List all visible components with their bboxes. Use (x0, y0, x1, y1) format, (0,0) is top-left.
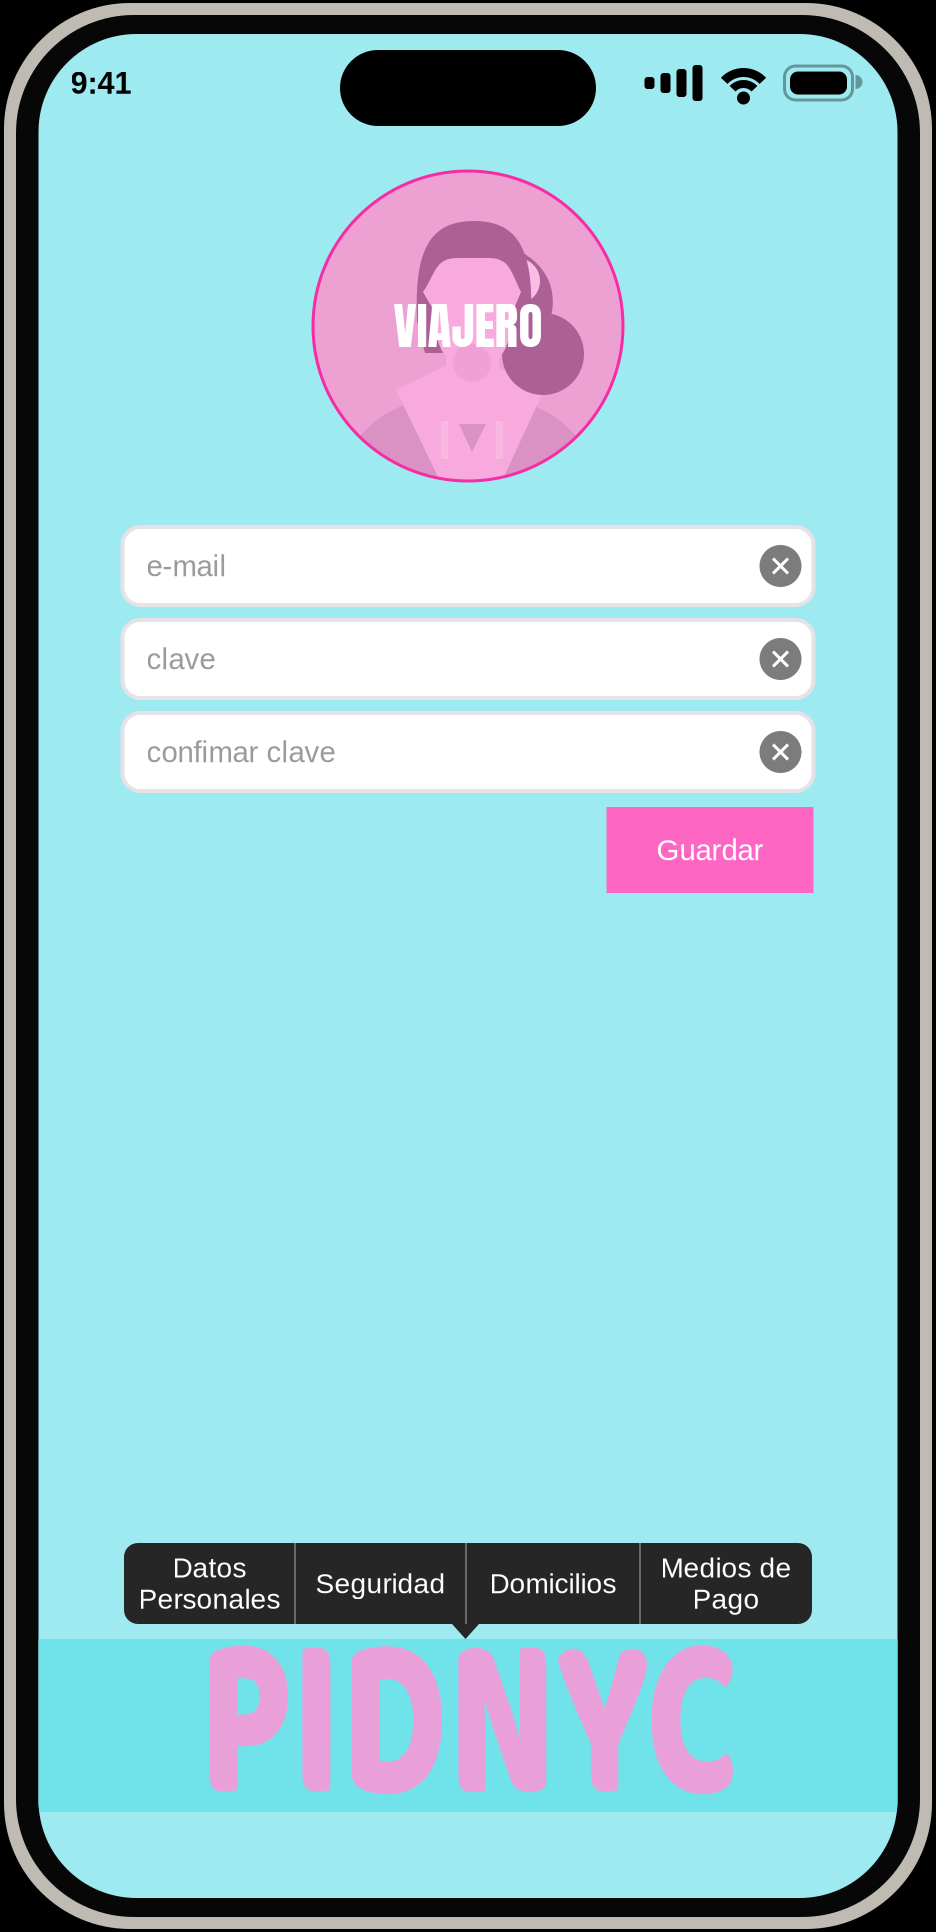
button[interactable]: confimar clave (122, 713, 813, 791)
staticText: Medios de (660, 1552, 791, 1583)
staticText: Domicilios (489, 1568, 616, 1599)
button[interactable]: clave (122, 620, 813, 698)
staticText: Seguridad (315, 1568, 445, 1599)
button[interactable]: Guardar (606, 807, 813, 893)
staticText: VIAJERO (393, 289, 542, 363)
button[interactable]: Datos (125, 1543, 294, 1624)
staticText: Datos (172, 1552, 246, 1583)
staticText: Pago (692, 1583, 759, 1615)
button[interactable]: Seguridad (296, 1543, 465, 1624)
staticText: clave (146, 643, 215, 675)
button[interactable]: Domicilios (467, 1543, 639, 1624)
button[interactable]: e-mail (122, 527, 813, 605)
button[interactable]: Medios de (641, 1543, 811, 1624)
staticText: 9:41 (70, 66, 131, 100)
staticText: Guardar (656, 834, 763, 866)
staticText: PIDNYC (199, 1598, 737, 1855)
staticText: Personales (138, 1583, 280, 1615)
staticText: confimar clave (146, 736, 335, 768)
staticText: e-mail (146, 550, 226, 582)
